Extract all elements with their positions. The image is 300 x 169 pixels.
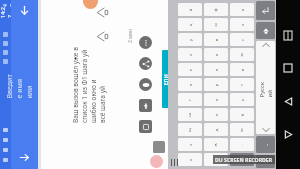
button[interactable]: Share option (139, 120, 152, 133)
button[interactable]: Key (178, 138, 202, 151)
staticText: р (213, 83, 219, 86)
button[interactable]: Back (280, 93, 296, 109)
staticText: ПОДЕЛИТЬСЯ (162, 72, 175, 85)
button[interactable]: Home (280, 126, 296, 142)
staticText: а (213, 53, 219, 56)
button[interactable]: Contact (96, 6, 109, 19)
staticText: к (187, 53, 193, 56)
button[interactable]: Back (11, 0, 38, 169)
button[interactable]: Key (178, 153, 202, 166)
staticText: б (239, 113, 245, 116)
button[interactable]: Document (153, 141, 165, 153)
staticText: и (239, 68, 245, 71)
staticText: , (263, 144, 269, 146)
button[interactable]: Русский (256, 41, 275, 134)
staticText: 3 (262, 160, 269, 163)
button[interactable]: Key (204, 138, 228, 151)
button[interactable]: Key (230, 138, 254, 151)
staticText: щ (187, 128, 193, 132)
button[interactable]: Key (178, 108, 202, 121)
staticText: ь (239, 98, 245, 101)
staticText: в (213, 38, 219, 41)
button[interactable]: Key (256, 1, 275, 20)
button[interactable]: Key (256, 155, 275, 168)
staticText: н (187, 83, 193, 86)
staticText: Введите имя или номер (4, 71, 44, 98)
button[interactable]: Key (178, 3, 202, 16)
button[interactable]: Key (204, 18, 228, 31)
button[interactable]: Key (204, 93, 228, 106)
button[interactable]: Share option (139, 99, 152, 112)
button[interactable]: Key (256, 136, 275, 153)
button[interactable]: Key (230, 48, 254, 61)
staticText: д (213, 128, 219, 131)
staticText: ш (187, 113, 193, 117)
button[interactable]: Key (230, 93, 254, 106)
staticText: Ваш вызов вошёл уже в список 1 из Ф1 шаг… (71, 47, 107, 123)
button[interactable]: Key (230, 18, 254, 31)
staticText: ф (213, 8, 219, 12)
staticText: ю (239, 128, 245, 132)
button[interactable]: Avatar (150, 155, 163, 168)
staticText: м (239, 53, 245, 57)
button[interactable]: Key (178, 48, 202, 61)
button[interactable]: Recent apps (280, 60, 296, 76)
staticText: е (187, 68, 193, 71)
staticText: . (239, 144, 245, 146)
button[interactable]: Key (178, 18, 202, 31)
staticText: л (213, 113, 219, 116)
button[interactable]: Key (230, 108, 254, 121)
staticText: г (187, 99, 193, 101)
button[interactable]: Key (204, 48, 228, 61)
button[interactable]: Key (204, 123, 228, 136)
staticText: х (187, 158, 193, 161)
button[interactable]: Key (178, 123, 202, 136)
staticText: DU SCREEN RECORDER (215, 156, 273, 163)
button[interactable]: Back (19, 5, 30, 16)
staticText: Русский (257, 78, 273, 97)
button[interactable]: Share option (139, 36, 152, 49)
staticText: э (213, 158, 219, 161)
staticText: 2 мин (127, 28, 134, 43)
button[interactable]: Key (204, 153, 228, 166)
staticText: п (213, 68, 219, 71)
staticText: о (213, 98, 219, 101)
button[interactable]: Key (204, 63, 228, 76)
button[interactable]: Share option (139, 78, 152, 91)
button[interactable]: Key (230, 3, 254, 16)
staticText: я (239, 8, 245, 11)
button[interactable]: Key (178, 78, 202, 91)
staticText: 14:27 (0, 7, 13, 18)
button[interactable]: Key (230, 33, 254, 46)
staticText: ж (213, 143, 219, 147)
button[interactable]: Key (178, 63, 202, 76)
button[interactable]: Contact (96, 30, 109, 43)
button[interactable]: Hide keyboard (19, 152, 30, 163)
button[interactable]: Key (178, 33, 202, 46)
staticText: ы (213, 23, 219, 27)
staticText: ⌫ (239, 156, 244, 162)
button[interactable]: ПОДЕЛИТЬСЯ (162, 50, 175, 108)
button[interactable]: Key (204, 33, 228, 46)
staticText: з (187, 143, 193, 146)
button[interactable]: Overview (280, 27, 296, 43)
button[interactable]: Key (204, 3, 228, 16)
staticText: с (239, 38, 245, 41)
staticText: т (239, 84, 245, 86)
button[interactable]: Key (204, 108, 228, 121)
button[interactable]: Key (204, 78, 228, 91)
button[interactable]: Key (230, 123, 254, 136)
button[interactable]: Key (256, 22, 275, 39)
staticText: у (187, 38, 193, 41)
staticText: ч (239, 23, 245, 26)
button[interactable]: Key (178, 93, 202, 106)
button[interactable]: Key (230, 153, 254, 166)
button[interactable]: Key (230, 63, 254, 76)
button[interactable]: Share option (139, 57, 152, 70)
staticText: ц (187, 23, 193, 26)
staticText: й (187, 8, 193, 11)
button[interactable]: Key (230, 78, 254, 91)
